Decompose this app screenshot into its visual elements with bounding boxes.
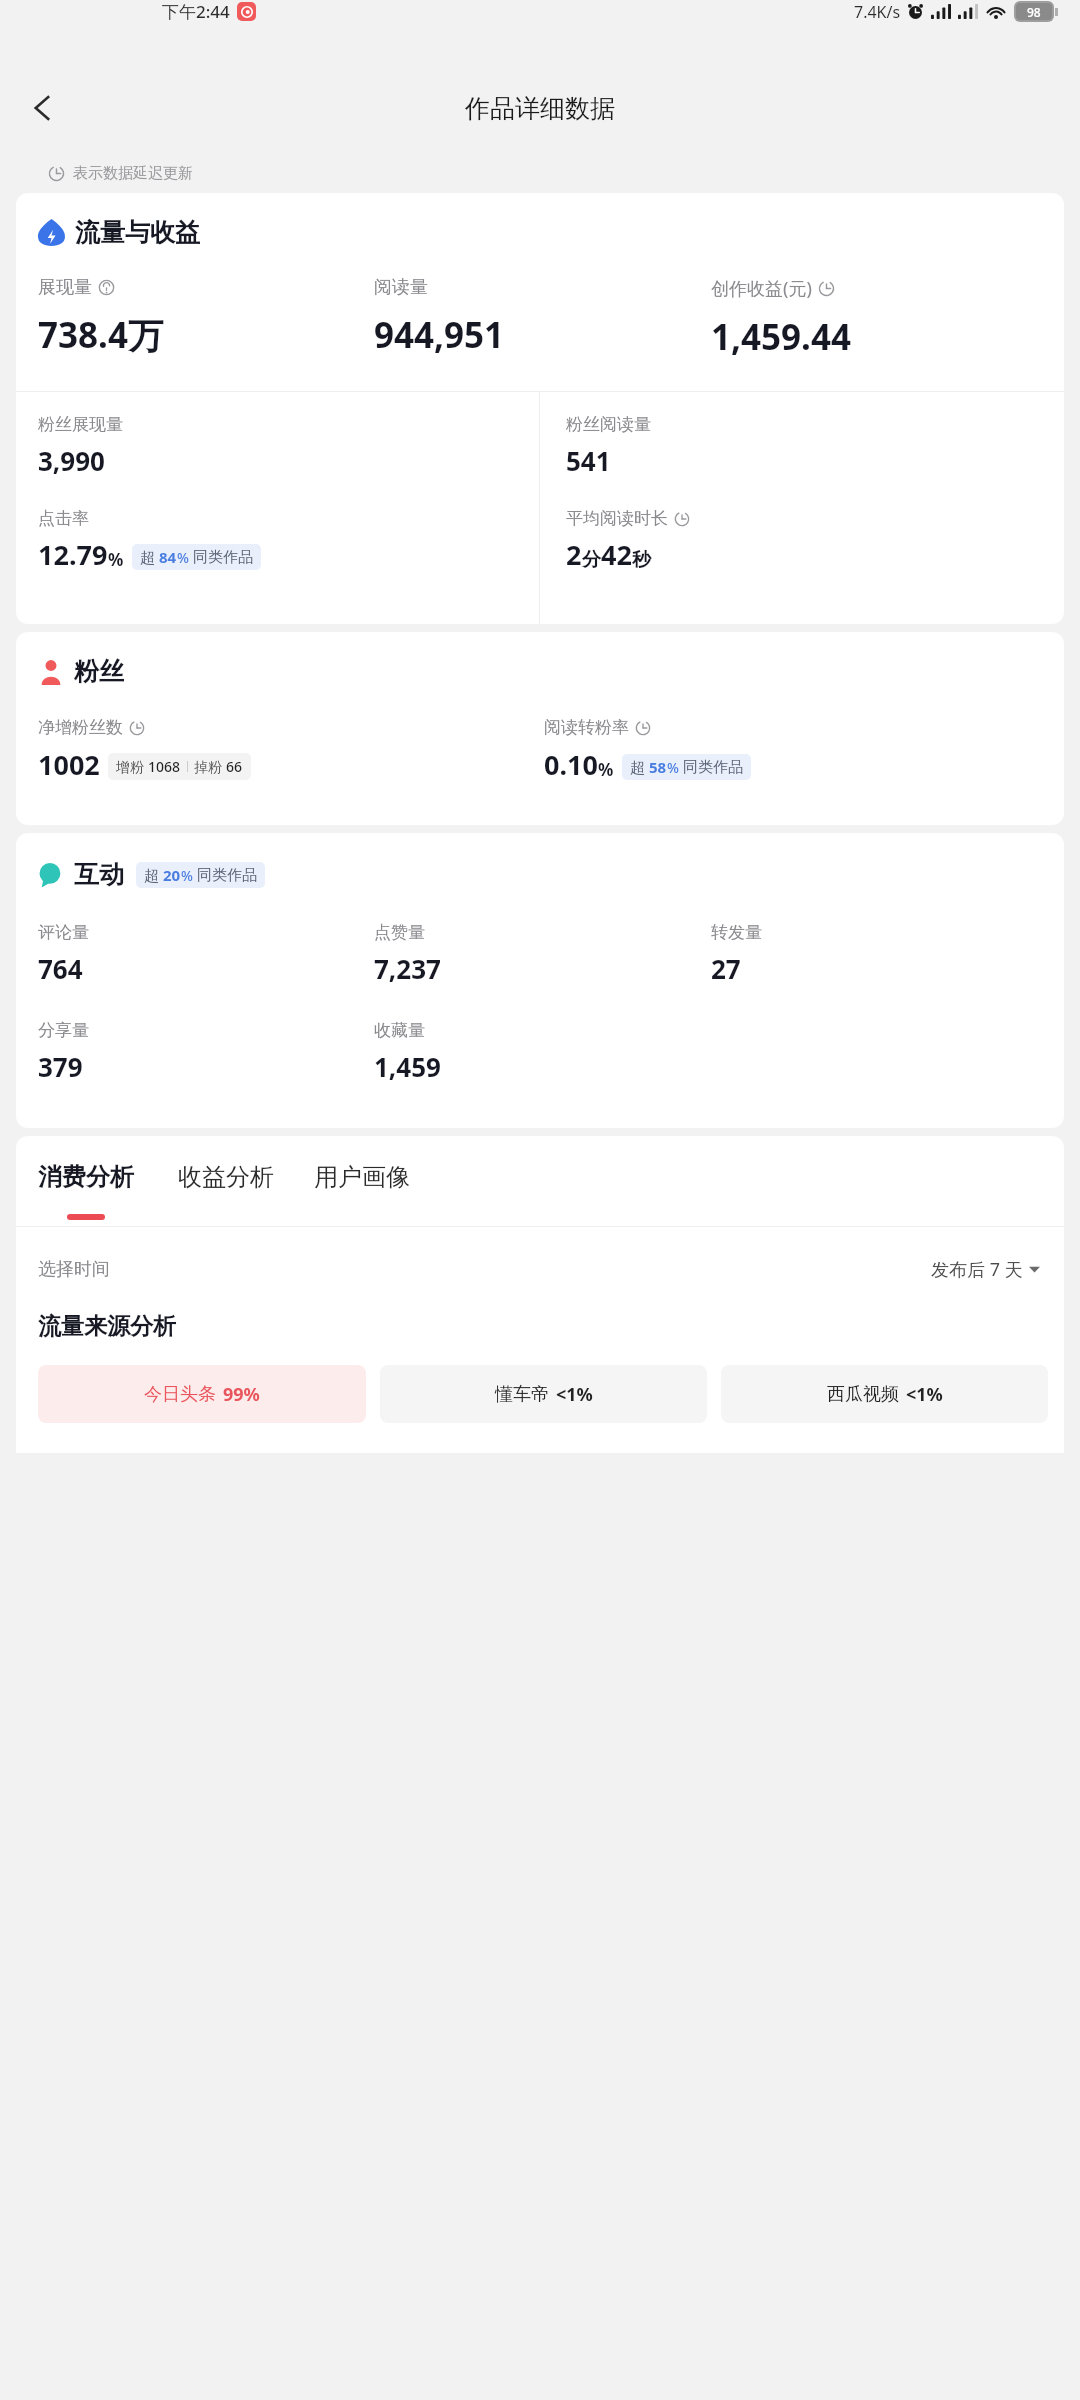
staticText: 7.4K/s — [854, 1, 901, 23]
staticText: 下午2:44 — [162, 0, 230, 23]
staticText: 阅读转粉率 — [544, 717, 629, 738]
staticText: 阅读量 — [374, 276, 428, 299]
staticText: 541 — [566, 443, 611, 478]
staticText: <1% — [556, 1382, 593, 1407]
staticText: 66 — [226, 757, 243, 776]
staticText: <1% — [906, 1382, 943, 1407]
staticText: 流量来源分析 — [38, 1312, 176, 1341]
staticText: 1,459 — [374, 1049, 441, 1084]
staticText: 创作收益(元) — [711, 276, 812, 301]
staticText: 点赞量 — [374, 922, 425, 943]
staticText: 同类作品 — [193, 548, 253, 567]
button[interactable]: 粉丝 — [38, 656, 124, 687]
staticText: 同类作品 — [683, 758, 743, 777]
staticText: 今日头条 — [144, 1383, 216, 1406]
staticText: 收益分析 — [178, 1162, 274, 1192]
staticText: 58 — [649, 757, 667, 777]
staticText: 用户画像 — [314, 1162, 410, 1192]
staticText: 分享量 — [38, 1020, 89, 1041]
button[interactable]: 互动 — [38, 859, 265, 890]
staticText: 展现量 — [38, 276, 92, 299]
staticText: 秒 — [632, 548, 651, 572]
staticText: 点击率 — [38, 508, 89, 529]
staticText: 转发量 — [711, 922, 762, 943]
button[interactable]: 用户画像 — [314, 1162, 410, 1226]
staticText: 增粉 — [116, 757, 148, 776]
staticText: 同类作品 — [197, 866, 257, 885]
staticText: 7,237 — [374, 951, 441, 986]
staticText: 738.4万 — [38, 311, 163, 359]
staticText: 12.79 — [38, 536, 108, 573]
staticText: 3,990 — [38, 443, 105, 478]
staticText: 分 — [582, 548, 601, 572]
staticText: 收藏量 — [374, 1020, 425, 1041]
staticText: 发布后 7 天 — [931, 1257, 1023, 1282]
staticText: 净增粉丝数 — [38, 717, 123, 738]
button[interactable]: 懂车帝 — [380, 1365, 707, 1423]
staticText: 2 — [566, 536, 582, 573]
staticText: 作品详细数据 — [465, 93, 615, 124]
button[interactable]: Back — [14, 79, 72, 137]
staticText: 27 — [711, 951, 741, 986]
staticText: 944,951 — [374, 311, 505, 359]
staticText: 互动 — [74, 859, 124, 890]
staticText: % — [177, 548, 193, 567]
button[interactable]: 今日头条 — [38, 1365, 366, 1423]
staticText: % — [598, 758, 614, 781]
staticText: 掉粉 — [194, 757, 226, 776]
staticText: 764 — [38, 951, 83, 986]
staticText: 消费分析 — [38, 1162, 134, 1192]
staticText: 表示数据延迟更新 — [73, 164, 193, 183]
staticText: 粉丝 — [74, 656, 124, 687]
staticText: % — [667, 758, 683, 777]
button[interactable]: 收益分析 — [178, 1162, 274, 1226]
staticText: 379 — [38, 1049, 83, 1084]
staticText: 粉丝展现量 — [38, 414, 123, 435]
staticText: 超 — [140, 547, 159, 567]
staticText: 1002 — [38, 746, 100, 783]
button[interactable]: 西瓜视频 — [721, 1365, 1048, 1423]
staticText: 98 — [1027, 4, 1041, 20]
staticText: 流量与收益 — [75, 217, 200, 248]
button[interactable]: 消费分析 — [38, 1162, 134, 1226]
button[interactable]: 发布后 7 天 — [931, 1257, 1040, 1282]
staticText: 20 — [163, 865, 181, 885]
staticText: 选择时间 — [38, 1258, 110, 1281]
staticText: 评论量 — [38, 922, 89, 943]
staticText: % — [108, 548, 124, 571]
staticText: 0.10 — [544, 746, 598, 783]
staticText: 超 — [144, 865, 163, 885]
staticText: 84 — [159, 547, 177, 567]
staticText: 42 — [601, 536, 632, 573]
button[interactable]: 流量与收益 — [38, 217, 200, 248]
staticText: 平均阅读时长 — [566, 508, 668, 529]
staticText: 99% — [223, 1382, 260, 1407]
staticText: 粉丝阅读量 — [566, 414, 651, 435]
staticText: % — [181, 866, 197, 885]
staticText: 西瓜视频 — [827, 1383, 899, 1406]
staticText: 懂车帝 — [495, 1383, 549, 1406]
staticText: 1068 — [148, 757, 181, 776]
staticText: 1,459.44 — [711, 313, 851, 361]
staticText: 超 — [630, 757, 649, 777]
